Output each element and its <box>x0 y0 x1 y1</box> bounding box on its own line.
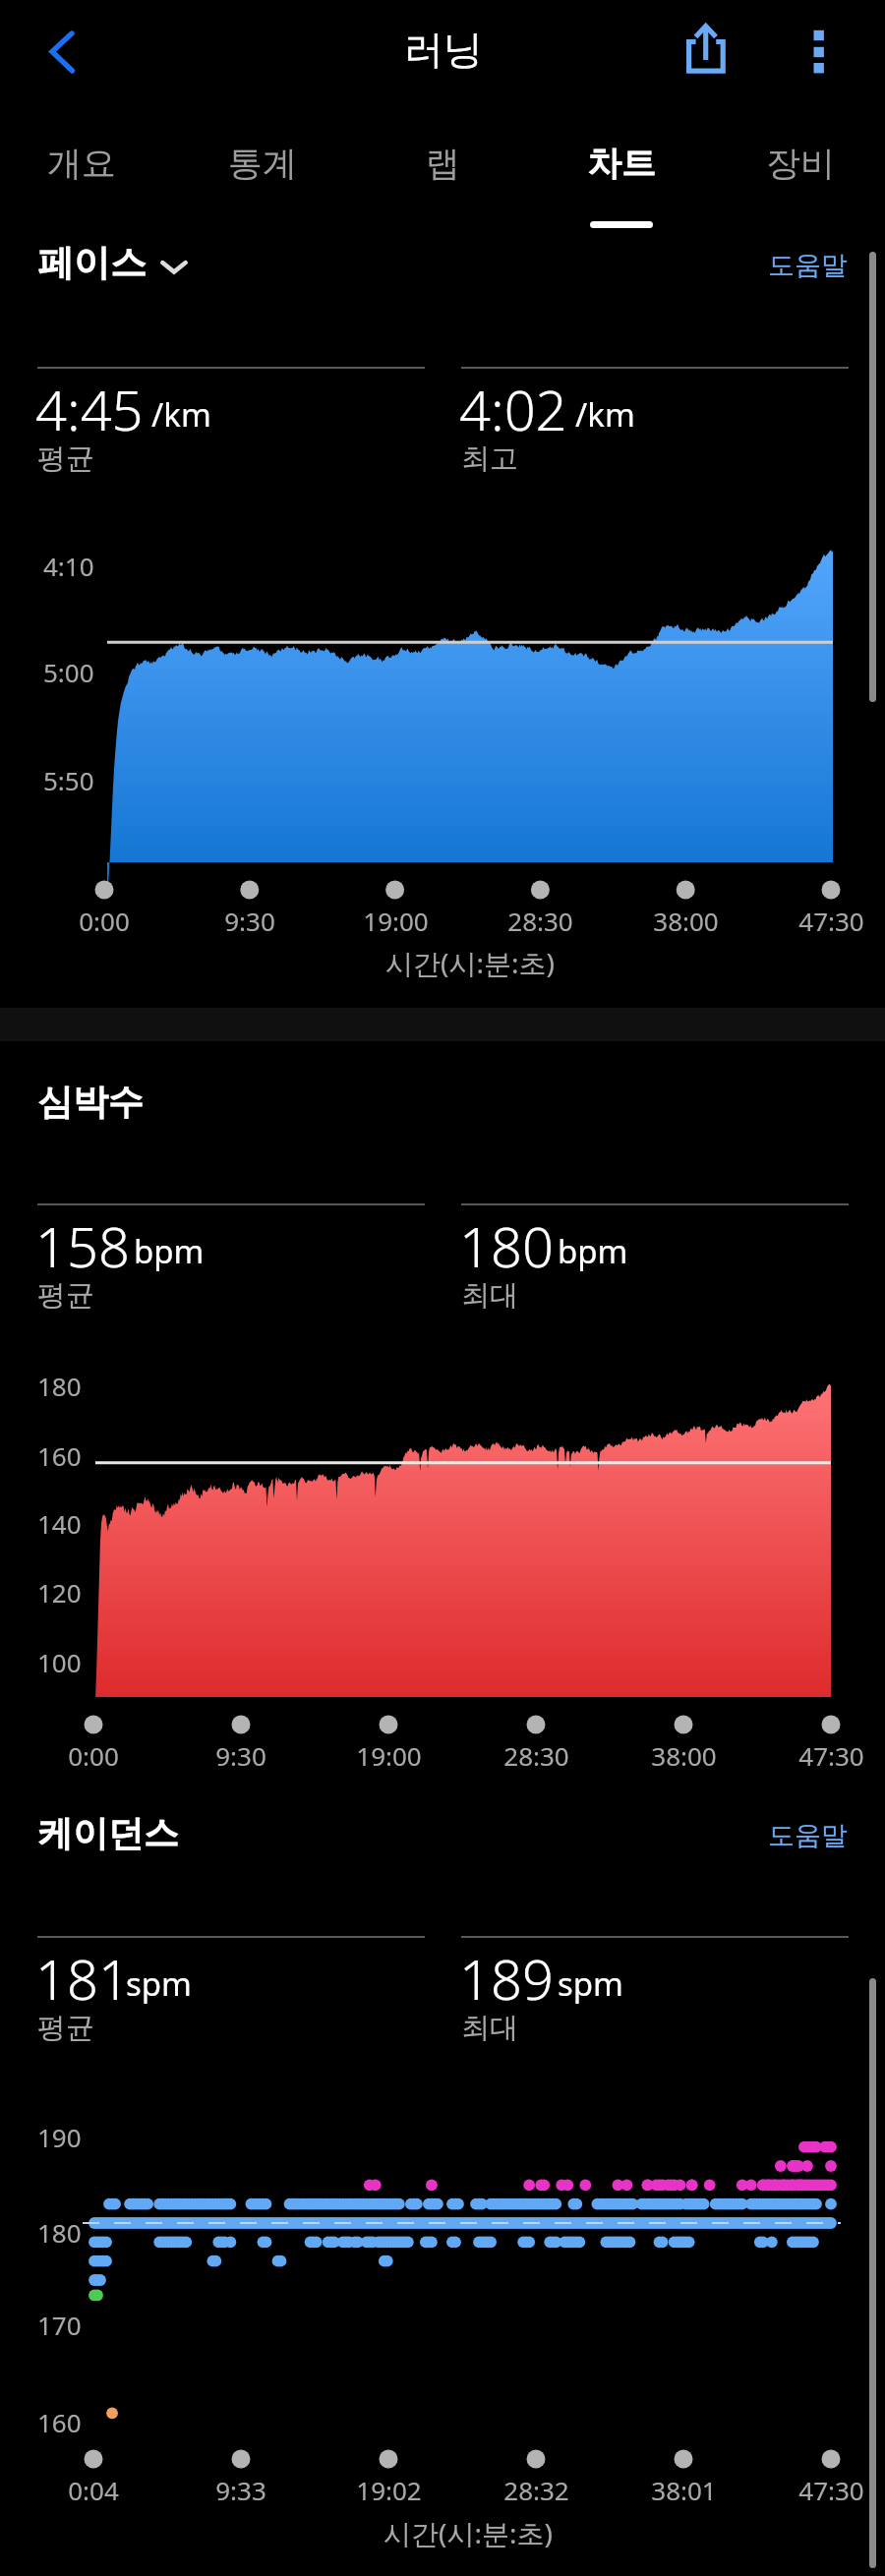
staticText: 19:02 <box>356 2473 422 2507</box>
staticText: 4:02 <box>459 372 567 446</box>
staticText: 개요 <box>47 142 116 185</box>
staticText: 19:00 <box>356 1738 422 1773</box>
staticText: 0:00 <box>68 1738 119 1773</box>
staticText: 180 <box>37 2215 82 2250</box>
staticText: 181 <box>35 1941 130 2016</box>
button[interactable]: 차트 <box>532 111 711 234</box>
button[interactable]: 도움말 <box>768 1819 848 1852</box>
button[interactable]: 페이스 <box>37 240 188 286</box>
staticText: 장비 <box>766 142 835 185</box>
staticText: 도움말 <box>768 249 848 282</box>
staticText: 5:00 <box>43 655 94 689</box>
button[interactable]: 도움말 <box>768 249 848 282</box>
button[interactable]: More options <box>780 8 856 85</box>
staticText: 47:30 <box>798 1738 864 1773</box>
staticText: 38:01 <box>651 2473 717 2507</box>
staticText: spm <box>126 1961 192 2006</box>
staticText: 차트 <box>587 142 656 185</box>
staticText: 시간(시:분:초) <box>385 944 555 981</box>
staticText: 심박수 <box>37 1080 144 1124</box>
staticText: 38:00 <box>651 1738 717 1773</box>
staticText: bpm <box>558 1229 628 1273</box>
staticText: bpm <box>134 1229 205 1273</box>
staticText: 28:30 <box>503 1738 569 1773</box>
staticText: 170 <box>37 2308 82 2342</box>
staticText: 4:10 <box>43 549 94 583</box>
staticText: 0:00 <box>79 904 130 938</box>
staticText: 최대 <box>461 2010 518 2046</box>
staticText: /km <box>151 392 211 437</box>
staticText: 최대 <box>461 1277 518 1314</box>
staticText: 페이스 <box>37 240 147 286</box>
staticText: 189 <box>459 1941 554 2016</box>
staticText: 9:33 <box>215 2473 266 2507</box>
button[interactable]: Share <box>667 8 743 85</box>
staticText: 시간(시:분:초) <box>383 2514 553 2551</box>
staticText: 140 <box>37 1506 82 1541</box>
staticText: 180 <box>37 1369 82 1403</box>
staticText: 28:30 <box>507 904 573 938</box>
staticText: 최고 <box>461 440 518 477</box>
staticText: 19:00 <box>363 904 429 938</box>
staticText: 러닝 <box>404 25 483 74</box>
staticText: 190 <box>37 2120 82 2154</box>
staticText: 도움말 <box>768 1819 848 1852</box>
button[interactable]: 개요 <box>0 111 171 234</box>
staticText: 47:30 <box>798 2473 864 2507</box>
staticText: 47:30 <box>798 904 864 938</box>
staticText: 160 <box>37 2405 82 2439</box>
staticText: 158 <box>35 1208 130 1283</box>
staticText: 랩 <box>426 142 460 185</box>
staticText: 평균 <box>37 2010 94 2046</box>
staticText: spm <box>558 1961 623 2006</box>
staticText: 100 <box>37 1645 82 1679</box>
staticText: 0:04 <box>68 2473 119 2507</box>
staticText: 4:45 <box>35 372 144 446</box>
staticText: /km <box>575 392 635 437</box>
button[interactable]: Back <box>13 13 91 91</box>
staticText: 9:30 <box>215 1738 266 1773</box>
staticText: 케이던스 <box>37 1811 179 1855</box>
staticText: 9:30 <box>224 904 275 938</box>
staticText: 평균 <box>37 440 94 477</box>
button[interactable]: 통계 <box>173 111 352 234</box>
staticText: 160 <box>37 1438 82 1473</box>
staticText: 180 <box>459 1208 554 1283</box>
staticText: 통계 <box>228 142 297 185</box>
staticText: 28:32 <box>503 2473 569 2507</box>
staticText: 38:00 <box>653 904 719 938</box>
button[interactable]: 장비 <box>711 111 885 234</box>
staticText: 평균 <box>37 1277 94 1314</box>
button[interactable]: 랩 <box>353 111 532 234</box>
staticText: 120 <box>37 1575 82 1610</box>
staticText: 5:50 <box>43 763 94 797</box>
